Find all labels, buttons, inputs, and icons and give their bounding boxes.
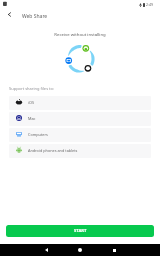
button[interactable]: Home	[74, 244, 86, 256]
button[interactable]: Android phones and tablets	[9, 144, 151, 158]
staticText: 2:49	[146, 2, 153, 7]
staticText: Mac	[28, 116, 36, 121]
button[interactable]: Back	[40, 244, 52, 256]
button[interactable]: Back	[5, 10, 14, 19]
staticText: iOS	[28, 100, 35, 105]
staticText: Android phones and tablets	[28, 148, 78, 153]
staticText: START	[74, 228, 87, 234]
staticText: Computers	[28, 132, 48, 137]
staticText: Support sharing files to:	[9, 86, 55, 91]
button[interactable]: Computers	[9, 128, 151, 142]
button[interactable]: Mac	[9, 112, 151, 126]
staticText: Receive without installing	[0, 31, 160, 37]
staticText: Web Share	[22, 13, 48, 20]
button[interactable]: iOS	[9, 96, 151, 110]
button[interactable]: Recents	[108, 244, 120, 256]
button[interactable]: START	[6, 225, 154, 237]
